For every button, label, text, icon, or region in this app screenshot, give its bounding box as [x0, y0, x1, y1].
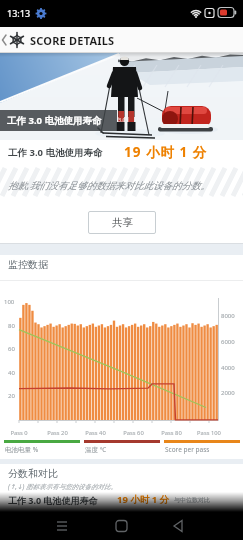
staticText: Score per pass	[165, 445, 210, 454]
staticText: 2000	[221, 389, 235, 397]
staticText: 8000	[221, 312, 235, 320]
staticText: Pass 40	[85, 429, 106, 437]
staticText: (↑,↓) 图标表示有与您的设备的对比。	[8, 482, 118, 491]
staticText: 工作 3.0 电池使用寿命	[8, 146, 103, 159]
staticText: Pass 80	[161, 429, 182, 437]
button[interactable]	[0, 27, 28, 53]
staticText: Pass 100	[197, 429, 221, 437]
staticText: 监控数据	[8, 258, 48, 271]
button[interactable]: 工作 3.0 电池使用寿命	[0, 53, 243, 140]
staticText: Pass 20	[47, 429, 68, 437]
button[interactable]: 工作 3.0 电池使用寿命	[0, 492, 243, 512]
staticText: 3.0	[118, 116, 126, 123]
staticText: 13:13	[7, 7, 31, 19]
button[interactable]	[106, 512, 136, 540]
staticText: 6000	[221, 338, 235, 346]
staticText: 80	[8, 322, 15, 330]
staticText: 工作 3.0 电池使用寿命	[7, 114, 102, 127]
staticText: Pass 0	[10, 429, 28, 437]
button[interactable]: 共享	[88, 211, 156, 234]
button[interactable]	[47, 512, 77, 540]
button[interactable]	[165, 512, 195, 540]
staticText: Pass 60	[123, 429, 144, 437]
staticText: 100	[4, 298, 15, 306]
staticText: 60	[8, 345, 15, 353]
staticText: 40	[8, 369, 15, 377]
staticText: 电池电量 %	[5, 445, 39, 454]
staticText: 温度 ℃	[85, 445, 107, 454]
staticText: 工作 3.0 电池使用寿命	[8, 494, 98, 506]
staticText: 4000	[221, 364, 235, 372]
staticText: 20	[8, 392, 15, 400]
staticText: 19 小时 1 分	[124, 143, 208, 161]
staticText: SCORE DETAILS	[30, 33, 115, 48]
staticText: 19 小时 1 分	[117, 493, 170, 506]
staticText: 抱歉,我们没有足够的数据来对比此设备的分数。	[8, 179, 210, 192]
staticText: 分数和对比	[8, 467, 58, 480]
staticText: 共享	[112, 216, 133, 229]
staticText: 与中位数对比	[174, 496, 210, 504]
